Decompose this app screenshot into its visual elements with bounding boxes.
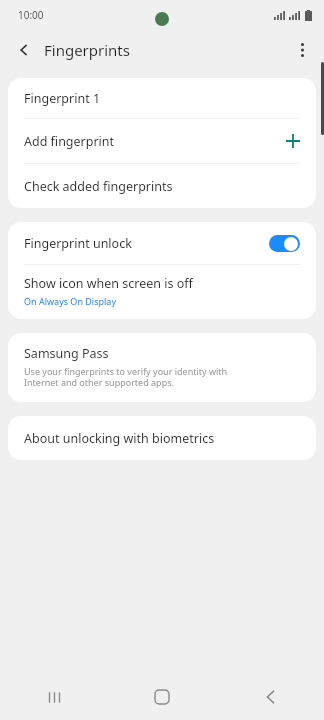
button[interactable]: Home (108, 674, 216, 720)
button[interactable]: Check added fingerprints (8, 164, 316, 208)
staticText: Fingerprint 1 (24, 90, 101, 107)
button[interactable]: Fingerprint 1 (8, 78, 316, 118)
button[interactable]: Back (10, 36, 38, 64)
button[interactable]: Samsung Pass (8, 333, 316, 402)
button[interactable]: Add fingerprint (8, 119, 316, 163)
staticText: Add fingerprint (24, 133, 115, 150)
staticText: On Always On Display (24, 295, 116, 307)
button[interactable]: Fingerprint unlock toggle (269, 235, 300, 252)
button[interactable]: Recent apps (0, 674, 108, 720)
button[interactable]: Back (216, 674, 324, 720)
staticText: Samsung Pass (24, 345, 109, 362)
staticText: Fingerprint unlock (24, 235, 132, 252)
staticText: 10:00 (18, 8, 44, 22)
staticText: Fingerprints (44, 40, 130, 60)
staticText: Use your fingerprints to verify your ide… (24, 365, 228, 389)
button[interactable]: More options (288, 36, 316, 64)
button[interactable]: About unlocking with biometrics (8, 416, 316, 460)
button[interactable]: Fingerprint unlock (8, 222, 316, 264)
staticText: Check added fingerprints (24, 178, 173, 195)
staticText: About unlocking with biometrics (24, 430, 215, 447)
staticText: Show icon when screen is off (24, 275, 193, 292)
button[interactable]: Show icon when screen is off (8, 265, 316, 319)
